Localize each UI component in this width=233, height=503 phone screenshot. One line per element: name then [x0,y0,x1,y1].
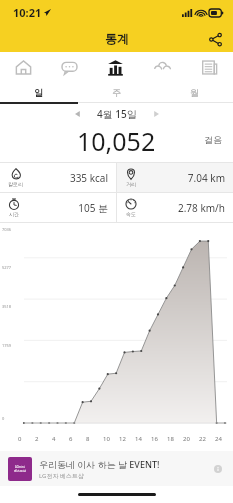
button[interactable]: Share [203,27,227,51]
button[interactable]: 거리 [117,163,233,192]
staticText: 5277 [2,265,12,270]
staticText: 335 kcal [23,171,108,185]
button[interactable]: Previous day [69,105,87,123]
staticText: 22 [199,435,206,443]
staticText: 6 [69,435,73,443]
staticText: 12 [119,435,126,443]
button[interactable]: 주 [77,82,155,102]
staticText: 1759 [2,343,12,348]
button[interactable]: 월 [155,82,233,102]
staticText: LG전자 [15,465,25,469]
staticText: LG전자 베스트샵 [39,472,84,480]
staticText: 24 [215,435,222,443]
staticText: 7.04 km [137,171,225,185]
staticText: 4월 15일 [97,107,137,121]
button[interactable]: LG전자 [0,451,233,486]
staticText: 3518 [2,304,12,309]
button[interactable]: Next day [147,105,165,123]
staticText: 2 [35,435,39,443]
staticText: 20 [183,435,190,443]
staticText: 시간 [9,211,19,217]
staticText: 18 [167,435,174,443]
staticText: 0 [2,416,5,421]
button[interactable]: 속도 [117,193,233,222]
button[interactable]: Friends [139,52,186,82]
staticText: 16 [151,435,158,443]
button[interactable]: 시간 [0,193,116,222]
staticText: 8 [86,435,90,443]
staticText: 10,052 [77,124,156,154]
button[interactable]: Chat [46,52,92,82]
staticText: 걸음 [204,134,222,145]
staticText: 10:21 [13,5,42,20]
staticText: 월 [190,87,199,98]
staticText: 2.78 km/h [137,201,225,215]
button[interactable]: 일 [0,82,77,102]
staticText: 105 분 [20,201,108,215]
staticText: 우리동네 이사 하는 날 EVENT! [39,458,160,470]
staticText: 일 [34,87,43,98]
staticText: 통계 [105,31,129,46]
staticText: 거리 [126,181,136,187]
staticText: 4 [52,435,56,443]
button[interactable]: 칼로리 [0,163,116,192]
staticText: 주 [112,87,121,98]
button[interactable]: Ad info [211,462,225,476]
staticText: 7036 [2,227,12,232]
staticText: 0 [18,435,22,443]
button[interactable]: Statistics [92,52,139,82]
staticText: 칼로리 [8,181,23,187]
button[interactable]: News [186,52,233,82]
button[interactable]: Home [0,52,46,82]
staticText: 베스트샵 [14,469,26,473]
staticText: 10 [103,435,110,443]
staticText: 14 [135,435,142,443]
staticText: 속도 [126,211,136,217]
